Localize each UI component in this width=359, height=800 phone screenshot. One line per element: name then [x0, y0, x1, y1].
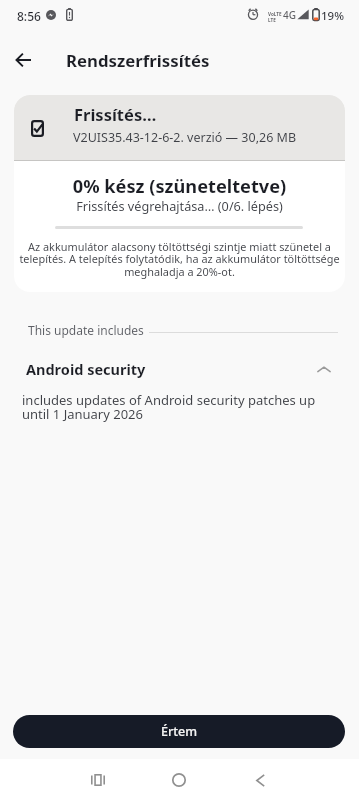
- staticText: 4G: [283, 8, 296, 22]
- staticText: This update includes: [28, 322, 144, 338]
- staticText: Frissítés végrehajtása… (0/6. lépés): [14, 197, 345, 214]
- button[interactable]: Android security: [0, 356, 359, 383]
- staticText: Rendszerfrissítés: [66, 49, 210, 72]
- staticText: includes updates of Android security pat…: [22, 391, 316, 423]
- staticText: 19%: [321, 8, 344, 24]
- button[interactable]: Back: [238, 758, 282, 800]
- staticText: 8:56: [17, 8, 41, 24]
- button[interactable]: Back: [5, 41, 42, 78]
- button[interactable]: Home: [157, 758, 201, 800]
- staticText: Az akkumulátor alacsony töltöttségi szin…: [14, 239, 345, 279]
- staticText: 0% kész (szüneteltetve): [14, 174, 345, 199]
- staticText: VoLTE: [268, 11, 282, 17]
- staticText: V2UIS35.43-12-6-2. verzió — 30,26 MB: [73, 129, 297, 146]
- button[interactable]: Recents: [76, 758, 120, 800]
- staticText: Frissítés…: [74, 103, 157, 125]
- staticText: Értem: [161, 723, 198, 740]
- staticText: Android security: [26, 359, 146, 379]
- staticText: LTE: [268, 17, 276, 23]
- button[interactable]: Értem: [13, 715, 345, 748]
